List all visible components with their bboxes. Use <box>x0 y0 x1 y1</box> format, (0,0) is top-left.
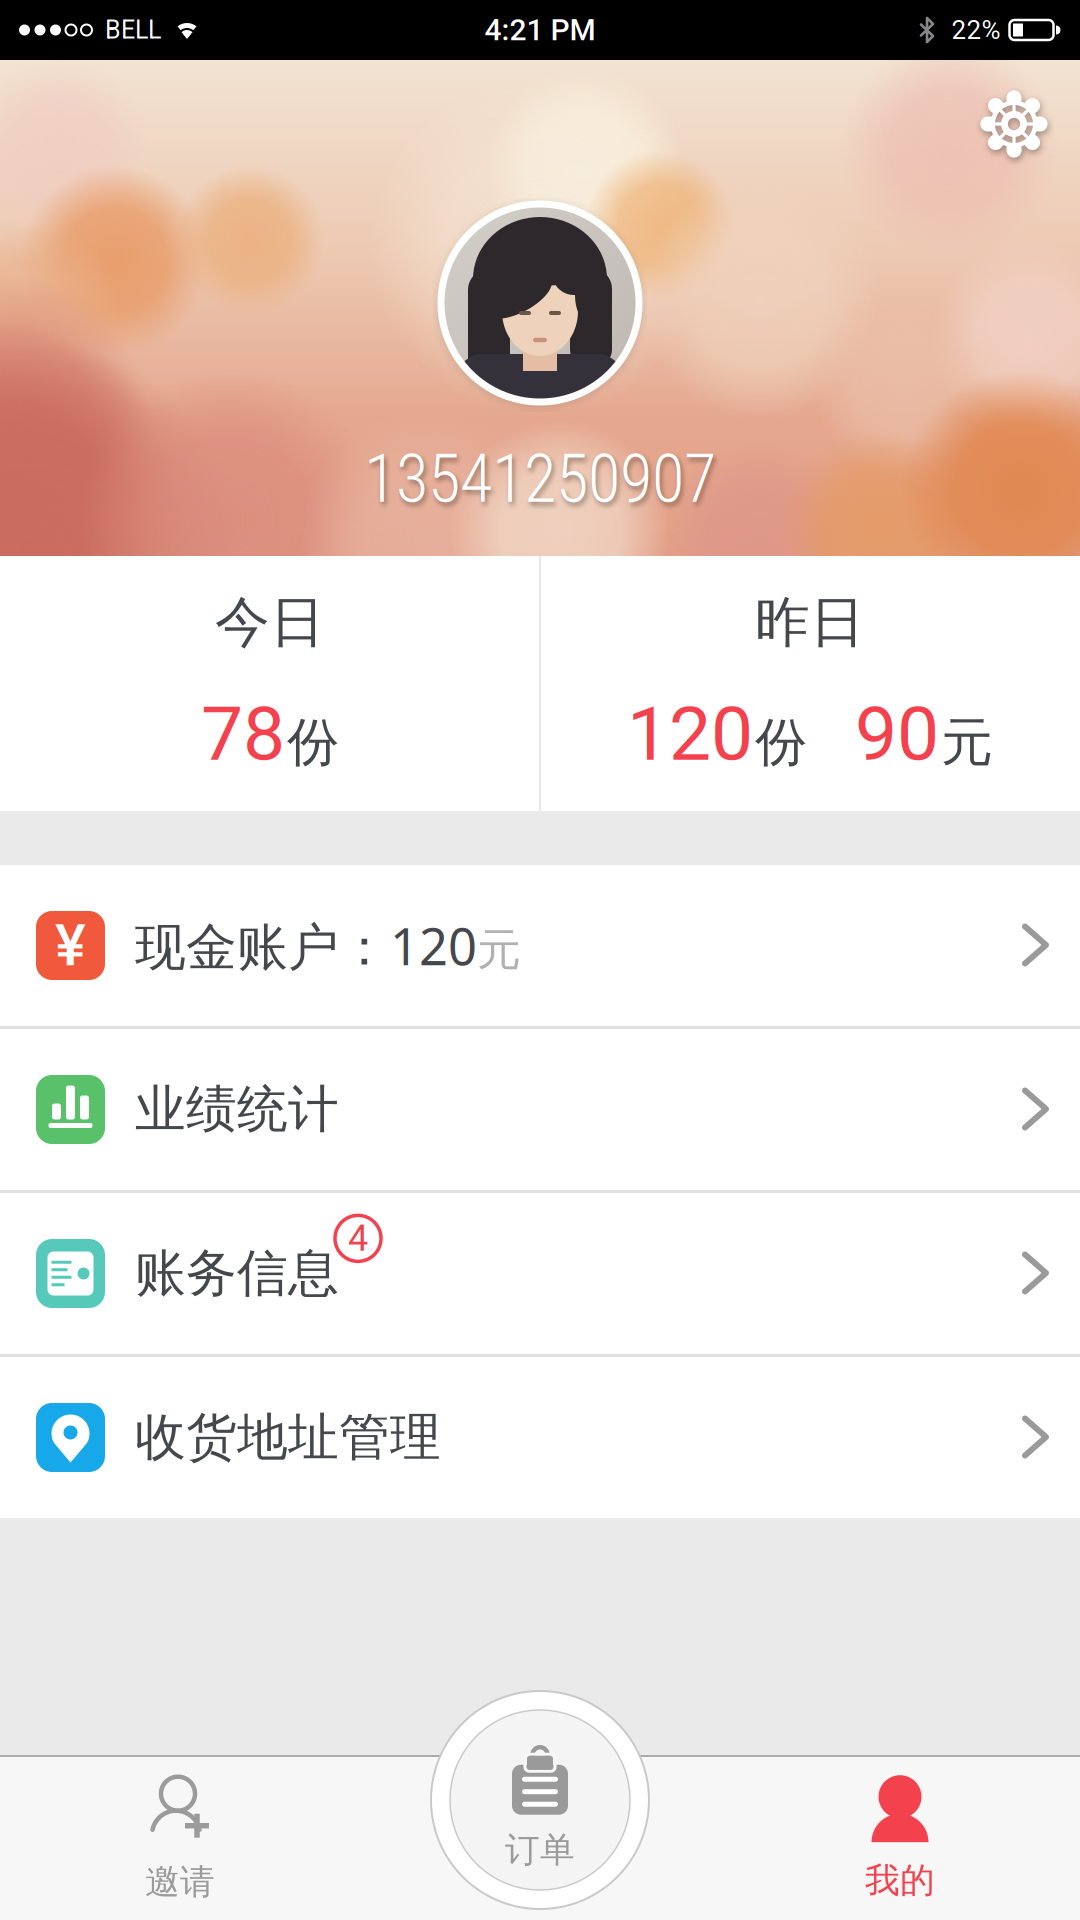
staticText: 订单 <box>505 1829 575 1871</box>
staticText: 份 <box>287 710 339 774</box>
button[interactable]: 收货地址管理 <box>0 1357 1080 1518</box>
button[interactable]: 业绩统计 <box>0 1029 1080 1190</box>
staticText: 4 <box>348 1217 368 1259</box>
staticText: 90 <box>855 690 939 778</box>
staticText: 邀请 <box>145 1861 215 1903</box>
staticText: 我的 <box>865 1859 935 1902</box>
button[interactable]: 账务信息 <box>0 1193 1080 1354</box>
button[interactable]: 我的 <box>720 1757 1080 1920</box>
staticText: 昨日 <box>755 589 865 656</box>
staticText: 份 <box>755 710 807 774</box>
button[interactable]: 订单 <box>431 1691 649 1909</box>
staticText: 账务信息 <box>135 1242 339 1305</box>
staticText: 4:21 PM <box>484 12 595 48</box>
staticText: 今日 <box>215 589 325 656</box>
staticText: 13541250907 <box>364 440 716 518</box>
staticText: 元 <box>941 710 993 774</box>
button[interactable]: Settings <box>981 91 1047 157</box>
staticText: 78 <box>201 690 285 778</box>
staticText: 现金账户：120 <box>135 912 477 979</box>
button[interactable]: 现金账户 <box>0 865 1080 1026</box>
staticText: 业绩统计 <box>135 1078 339 1141</box>
staticText: BELL <box>105 15 161 45</box>
staticText: ¥ <box>55 911 86 979</box>
button[interactable]: 邀请 <box>0 1757 360 1920</box>
staticText: 22% <box>951 15 1000 45</box>
staticText: 120 <box>627 690 753 778</box>
staticText: 收货地址管理 <box>135 1406 441 1469</box>
staticText: 元 <box>477 923 521 977</box>
